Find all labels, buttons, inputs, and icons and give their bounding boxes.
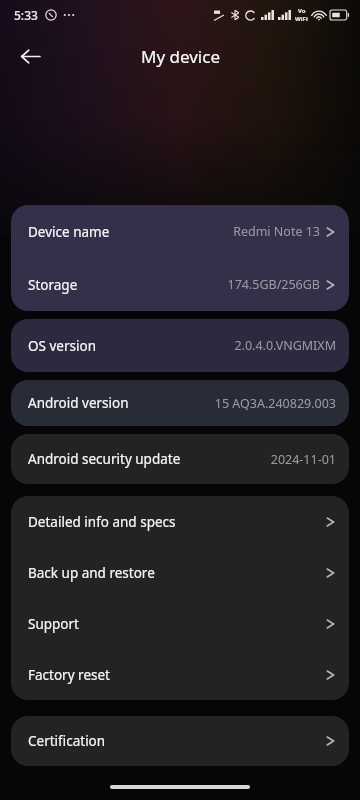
staticText: Storage (28, 276, 78, 294)
staticText: Device name (28, 223, 110, 241)
staticText: Vo (298, 7, 306, 15)
staticText: 15 AQ3A.240829.003 (214, 395, 336, 412)
staticText: Android security update (28, 450, 181, 468)
staticText: Detailed info and specs (28, 513, 176, 531)
button[interactable]: Android version (11, 380, 349, 426)
staticText: 174.5GB/256GB (227, 276, 320, 293)
staticText: 5:33 (14, 7, 38, 23)
button[interactable]: Support (11, 598, 349, 649)
button[interactable]: Android security update (11, 434, 349, 484)
staticText: Support (28, 615, 79, 633)
staticText: WiFi (295, 15, 308, 23)
staticText: Back up and restore (28, 564, 155, 582)
staticText: 2.0.4.0.VNGMIXM (234, 337, 336, 354)
staticText: OS version (28, 337, 96, 355)
staticText: Redmi Note 13 (233, 223, 320, 240)
button[interactable]: OS version (11, 319, 349, 372)
staticText: 2024-11-01 (270, 451, 336, 468)
button[interactable]: Device name (11, 205, 349, 258)
button[interactable]: Factory reset (11, 649, 349, 700)
button[interactable]: Back (8, 34, 52, 78)
button[interactable]: Storage (11, 258, 349, 311)
staticText: Android version (28, 394, 129, 412)
staticText: Factory reset (28, 666, 110, 684)
button[interactable]: Certification (11, 716, 349, 766)
button[interactable]: Detailed info and specs (11, 496, 349, 547)
button[interactable]: Back up and restore (11, 547, 349, 598)
staticText: My device (141, 45, 220, 68)
staticText: Certification (28, 732, 106, 750)
